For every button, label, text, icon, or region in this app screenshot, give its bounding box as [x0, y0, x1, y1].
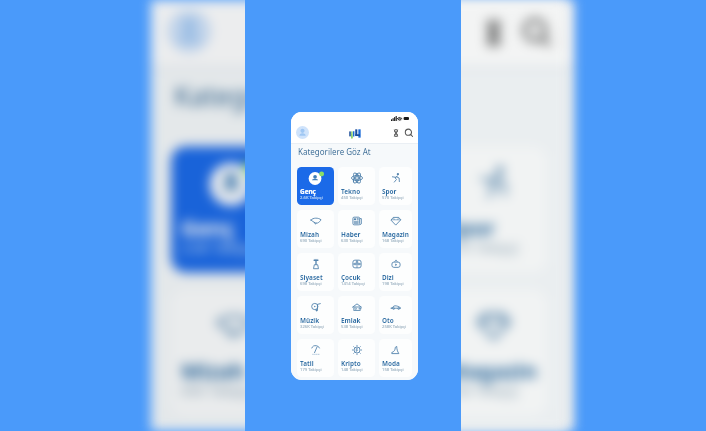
- staticText: 450 Takipçi: [310, 239, 384, 259]
- button[interactable]: Filter: [391, 128, 401, 138]
- staticText: 198 Takipçi: [382, 281, 404, 287]
- staticText: 450 Takipçi: [341, 195, 363, 201]
- staticText: Haber: [341, 230, 361, 239]
- button[interactable]: Haber: [307, 289, 431, 416]
- staticText: 698 Takipçi: [300, 281, 322, 287]
- button[interactable]: Spor: [437, 146, 547, 273]
- staticText: Genç: [174, 213, 227, 243]
- staticText: 630 Takipçi: [341, 238, 363, 244]
- staticText: 326K Takipçi: [300, 324, 325, 330]
- staticText: 2.6K Takipçi: [174, 239, 251, 259]
- staticText: Tatil: [300, 359, 314, 368]
- button[interactable]: Genç: [171, 146, 294, 273]
- button[interactable]: Oto: [379, 296, 412, 334]
- staticText: Mizah: [174, 356, 241, 386]
- staticText: 168 Takipçi: [382, 238, 404, 244]
- staticText: 179 Takipçi: [300, 367, 322, 373]
- button[interactable]: Genç: [297, 167, 334, 205]
- staticText: 538 Takipçi: [341, 324, 363, 330]
- staticText: 570 Takipçi: [382, 195, 404, 201]
- button[interactable]: Profile: [161, 10, 204, 53]
- button[interactable]: Kripto: [338, 339, 375, 377]
- staticText: Spor: [447, 213, 497, 243]
- staticText: 570 Takipçi: [454, 239, 527, 259]
- staticText: Haber: [310, 356, 377, 386]
- staticText: Genç: [300, 187, 316, 196]
- staticText: Mizah: [300, 230, 320, 239]
- staticText: Çocuk: [341, 273, 361, 282]
- button[interactable]: Müzik: [297, 296, 334, 334]
- staticText: Oto: [382, 316, 394, 325]
- staticText: Kategorilere Göz At: [167, 76, 410, 113]
- button[interactable]: Tekno: [307, 146, 431, 273]
- staticText: Tekno: [317, 213, 384, 243]
- staticText: 2.6K Takipçi: [300, 195, 323, 201]
- button[interactable]: Search: [404, 128, 414, 138]
- button[interactable]: Magazin: [444, 289, 554, 416]
- button[interactable]: Mizah: [297, 210, 334, 248]
- staticText: Dizi: [382, 273, 394, 282]
- staticText: 168 Takipçi: [447, 383, 520, 403]
- staticText: Tekno: [341, 187, 361, 196]
- staticText: Siyaset: [300, 273, 323, 282]
- staticText: 690 Takipçi: [300, 238, 322, 244]
- staticText: 148 Takipçi: [341, 367, 363, 373]
- button[interactable]: Filter: [484, 16, 517, 50]
- staticText: Kategorilere Göz At: [174, 76, 417, 113]
- staticText: Haber: [317, 356, 384, 386]
- staticText: 158 Takipçi: [382, 367, 404, 373]
- staticText: 690 Takipçi: [181, 383, 254, 403]
- staticText: 1414 Takipçi: [341, 281, 365, 287]
- button[interactable]: Çocuk: [338, 253, 375, 291]
- staticText: 168 Takipçi: [454, 383, 527, 403]
- staticText: Emlak: [341, 316, 361, 325]
- staticText: Mizah: [181, 356, 248, 386]
- staticText: 570 Takipçi: [447, 239, 520, 259]
- button[interactable]: Dizi: [379, 253, 412, 291]
- button[interactable]: Mizah: [164, 289, 287, 416]
- button[interactable]: Search: [520, 16, 554, 50]
- button[interactable]: Tatil: [297, 339, 334, 377]
- button[interactable]: Mizah: [171, 289, 294, 416]
- staticText: 2.6K Takipçi: [181, 239, 258, 259]
- button[interactable]: Spor: [444, 146, 554, 273]
- staticText: Magazin: [382, 230, 409, 239]
- button[interactable]: Spor: [379, 167, 412, 205]
- button[interactable]: Emlak: [338, 296, 375, 334]
- staticText: Genç: [181, 213, 234, 243]
- button[interactable]: Moda: [379, 339, 412, 377]
- button[interactable]: Haber: [338, 210, 375, 248]
- button[interactable]: Siyaset: [297, 253, 334, 291]
- staticText: Kripto: [341, 359, 361, 368]
- button[interactable]: Profile: [296, 126, 309, 139]
- staticText: Kategorilere Göz At: [298, 146, 371, 157]
- staticText: 450 Takipçi: [317, 239, 391, 259]
- staticText: Spor: [382, 187, 397, 196]
- staticText: Moda: [382, 359, 400, 368]
- staticText: Müzik: [300, 316, 320, 325]
- button[interactable]: Magazin: [379, 210, 412, 248]
- button[interactable]: Tekno: [300, 146, 424, 273]
- button[interactable]: Magazin: [437, 289, 547, 416]
- staticText: Magazin: [454, 356, 544, 386]
- button[interactable]: Search: [527, 16, 561, 50]
- staticText: 258K Takipçi: [382, 324, 407, 330]
- staticText: Magazin: [447, 356, 537, 386]
- staticText: Spor: [454, 213, 504, 243]
- button[interactable]: Tekno: [338, 167, 375, 205]
- button[interactable]: Haber: [300, 289, 424, 416]
- button[interactable]: Profile: [168, 10, 211, 53]
- button[interactable]: Filter: [477, 16, 510, 50]
- staticText: 690 Takipçi: [174, 383, 247, 403]
- button[interactable]: Genç: [164, 146, 287, 273]
- staticText: Tekno: [310, 213, 377, 243]
